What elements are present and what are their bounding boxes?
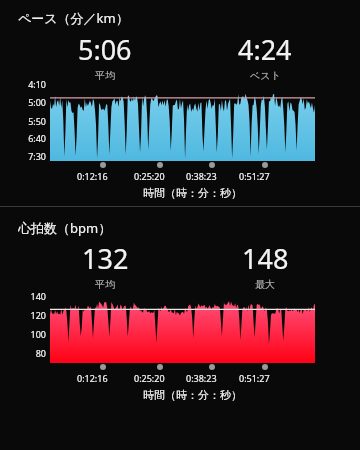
staticText: 0:25:20 [134,372,165,384]
staticText: 4:24 [238,31,292,68]
staticText: 6:40 [14,132,46,145]
button[interactable]: 5:06 [55,31,155,79]
button[interactable]: 132 [55,240,155,288]
staticText: 時間（時：分：秒） [143,186,242,200]
button[interactable]: 148 [215,240,315,288]
staticText: 120 [14,309,46,322]
staticText: ベスト [250,69,281,80]
staticText: 132 [82,240,129,277]
staticText: 4:10 [14,78,46,91]
button[interactable]: 4:24 [215,31,315,79]
staticText: 0:12:16 [77,170,108,182]
staticText: 100 [14,328,46,341]
staticText: 平均 [95,69,115,80]
staticText: 5:50 [14,115,46,128]
staticText: 148 [242,240,289,277]
staticText: 140 [14,290,46,303]
staticText: 5:00 [14,96,46,109]
staticText: 最大 [255,278,275,289]
staticText: 80 [14,347,46,360]
staticText: 7:30 [14,150,46,163]
staticText: 5:06 [78,31,132,68]
staticText: 0:38:23 [186,170,217,182]
staticText: 0:51:27 [239,170,270,182]
staticText: 平均 [95,278,115,289]
staticText: 0:38:23 [186,372,217,384]
staticText: 0:51:27 [239,372,270,384]
staticText: 時間（時：分：秒） [143,388,242,402]
staticText: 0:12:16 [77,372,108,384]
staticText: 0:25:20 [134,170,165,182]
staticText: ペース（分／km） [18,9,129,27]
staticText: 心拍数（bpm） [18,219,112,237]
